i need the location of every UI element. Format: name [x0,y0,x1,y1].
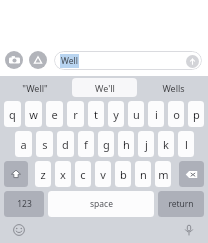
staticText: Well [61,55,78,67]
button[interactable]: Wells [139,76,208,99]
staticText: u [133,107,140,122]
button[interactable]: l [178,131,194,157]
staticText: 123 [17,198,32,210]
button[interactable]: Camera [5,51,23,69]
button[interactable]: Send [186,55,199,68]
button[interactable]: p [188,101,204,127]
button[interactable]: v [95,161,111,187]
staticText: x [60,167,66,182]
button[interactable]: e [46,101,63,127]
button[interactable]: c [75,161,91,187]
button[interactable]: k [158,131,174,157]
button[interactable]: g [98,131,114,157]
staticText: f [84,137,88,152]
button[interactable]: We'll [72,78,137,97]
staticText: i [155,107,158,122]
button[interactable]: u [128,101,144,127]
button[interactable]: 123 [4,191,44,217]
staticText: We'll [95,82,115,94]
button[interactable]: "Well" [0,76,70,99]
button[interactable]: a [15,131,32,157]
button[interactable]: m [155,161,171,187]
staticText: "Well" [22,82,48,94]
staticText: return [168,198,194,210]
staticText: s [42,137,48,152]
button[interactable]: Backspace [179,161,204,187]
button[interactable]: j [138,131,154,157]
staticText: k [163,137,169,152]
button[interactable]: Emoji [9,220,29,240]
button[interactable]: n [135,161,151,187]
button[interactable]: Dictate [179,220,199,240]
button[interactable]: y [108,101,124,127]
staticText: a [20,137,27,152]
button[interactable]: q [4,101,21,127]
staticText: h [123,137,130,152]
staticText: l [185,137,188,152]
staticText: g [103,137,110,152]
button[interactable]: t [88,101,104,127]
staticText: j [145,137,148,152]
button[interactable]: b [115,161,131,187]
button[interactable]: App Store [29,51,47,69]
staticText: m [158,167,169,182]
button[interactable]: space [48,191,154,217]
staticText: d [62,137,69,152]
staticText: y [113,107,119,122]
staticText: w [29,107,38,122]
staticText: v [100,167,106,182]
staticText: r [73,107,78,122]
button[interactable]: s [36,131,53,157]
staticText: z [40,167,46,182]
staticText: b [120,167,127,182]
staticText: space [90,198,113,210]
button[interactable]: f [78,131,94,157]
staticText: q [9,107,16,122]
button[interactable]: return [158,191,204,217]
button[interactable]: Well [54,51,202,70]
button[interactable]: w [25,101,42,127]
staticText: n [140,167,147,182]
staticText: o [173,107,180,122]
button[interactable]: d [57,131,74,157]
button[interactable]: Shift [4,161,28,187]
staticText: Wells [162,82,185,94]
staticText: c [80,167,86,182]
button[interactable]: x [55,161,71,187]
staticText: p [193,107,200,122]
button[interactable]: i [148,101,164,127]
button[interactable]: o [168,101,184,127]
button[interactable]: r [67,101,84,127]
staticText: t [94,107,98,122]
staticText: e [51,107,58,122]
button[interactable]: h [118,131,134,157]
button[interactable]: z [35,161,51,187]
